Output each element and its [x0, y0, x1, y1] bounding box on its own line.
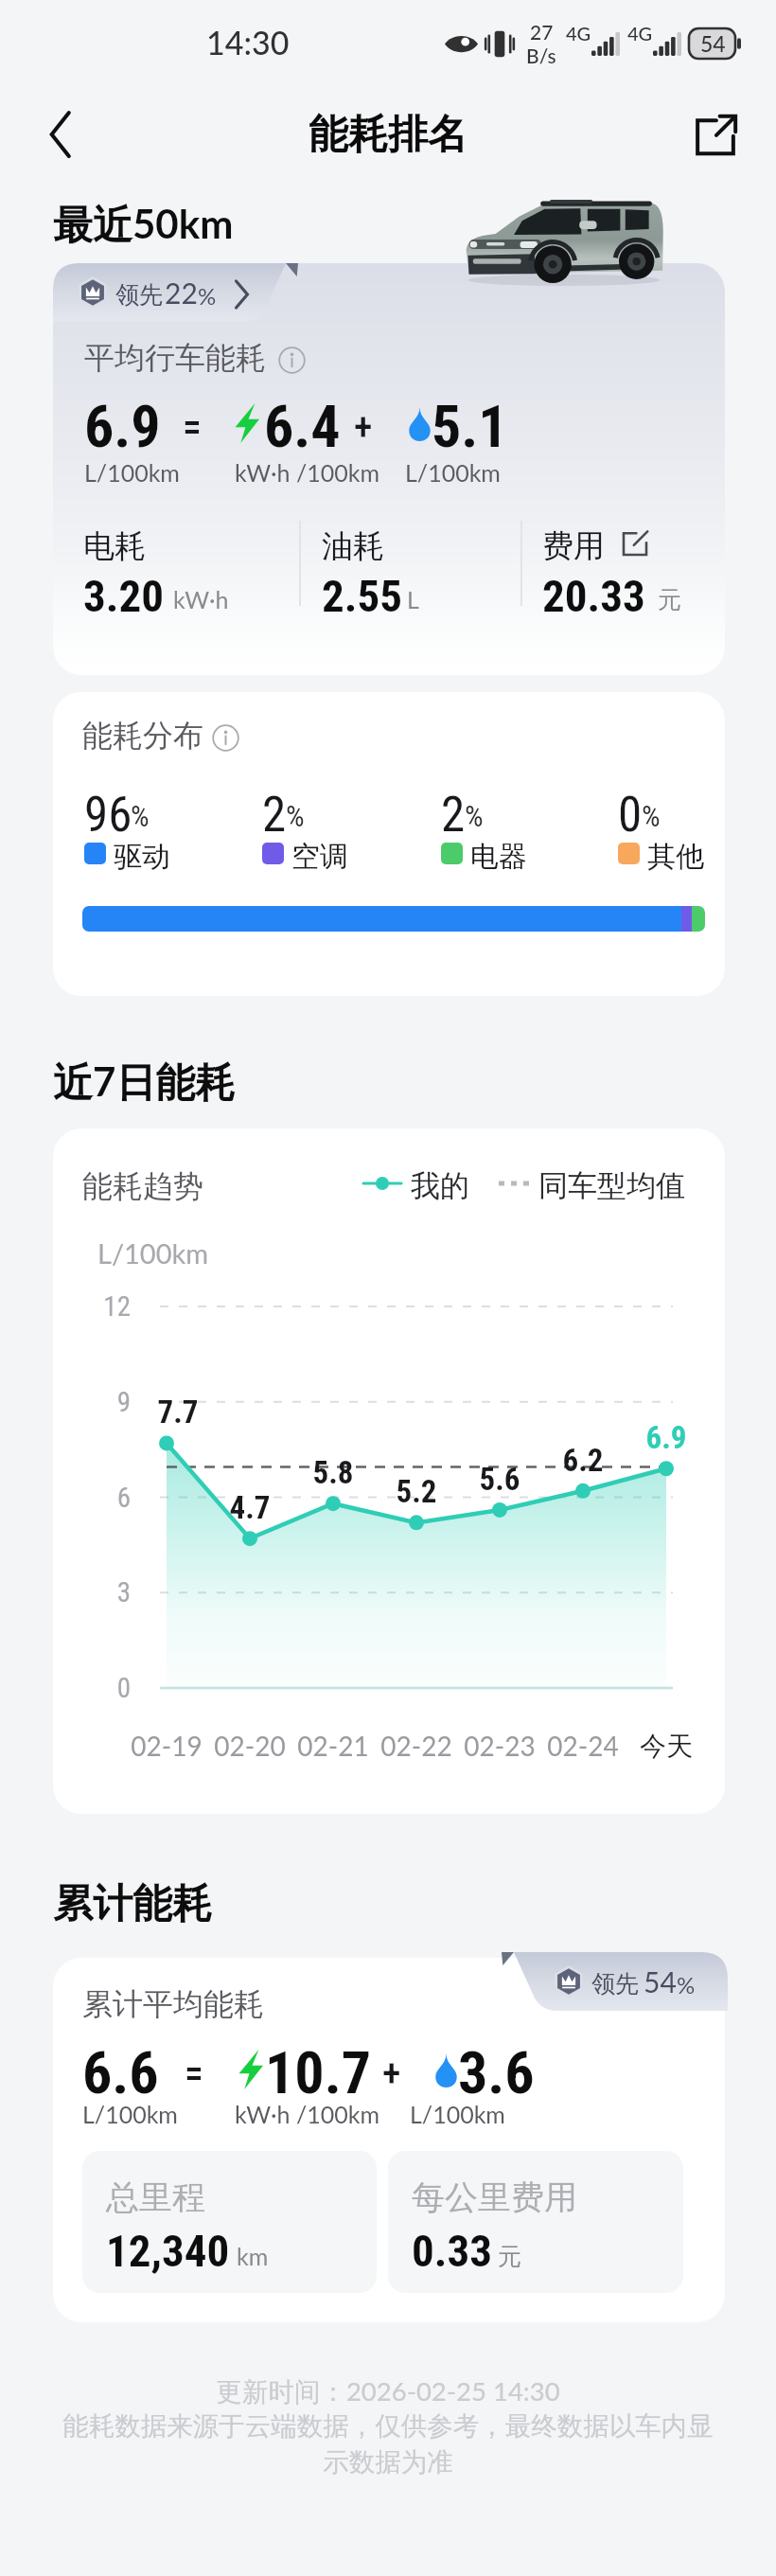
staticText: 54	[700, 30, 726, 57]
staticText: 02-23	[452, 1730, 547, 1762]
staticText: 02-22	[369, 1730, 464, 1762]
staticText: 27	[530, 20, 554, 44]
button[interactable]	[53, 692, 725, 996]
staticText: 4.7	[212, 1489, 288, 1526]
staticText: 2.55	[322, 570, 402, 622]
staticText: 0.33	[412, 2225, 492, 2277]
staticText: %	[131, 799, 150, 833]
button[interactable]	[53, 1958, 725, 2322]
staticText: 累计平均能耗	[82, 1985, 264, 2023]
staticText: kW·h /100km	[235, 458, 379, 487]
button[interactable]: 编辑费用	[620, 528, 650, 559]
staticText: 12,340	[106, 2225, 230, 2277]
staticText: +	[354, 405, 373, 450]
staticText: 累计能耗	[53, 1879, 212, 1929]
staticText: 54	[644, 1964, 677, 1999]
staticText: 能耗排名	[309, 110, 467, 160]
staticText: L	[407, 585, 419, 613]
staticText: 6.9	[628, 1419, 704, 1456]
staticText: 02-19	[119, 1730, 214, 1762]
button[interactable]	[53, 1128, 725, 1814]
button[interactable]: 每公里费用	[388, 2151, 683, 2293]
staticText: 费用	[542, 526, 605, 566]
staticText: %	[286, 799, 305, 833]
staticText: 我的	[411, 1167, 469, 1204]
staticText: 02-24	[536, 1730, 630, 1762]
staticText: 同车型均值	[538, 1167, 685, 1204]
staticText: 20.33	[542, 570, 645, 622]
staticText: 14:30	[206, 23, 290, 62]
staticText: 0	[74, 1672, 131, 1704]
staticText: 10.7	[265, 2038, 372, 2107]
staticText: %	[198, 282, 217, 310]
staticText: %	[677, 1971, 696, 1999]
staticText: L/100km	[405, 458, 501, 487]
staticText: 5.1	[432, 392, 508, 461]
staticText: 电器	[470, 839, 527, 875]
button[interactable]: 总里程	[82, 2151, 377, 2293]
staticText: 12	[74, 1290, 131, 1323]
staticText: 9	[74, 1386, 131, 1418]
staticText: 4G	[566, 22, 591, 44]
staticText: 3.20	[83, 570, 164, 622]
staticText: kW·h	[173, 585, 229, 613]
staticText: 3.6	[458, 2038, 535, 2107]
button[interactable]: 返回	[28, 102, 93, 167]
staticText: 油耗	[322, 526, 384, 566]
staticText: 22	[165, 275, 198, 310]
staticText: km	[237, 2242, 269, 2270]
staticText: 驱动	[114, 839, 170, 875]
button[interactable]: 领先	[502, 1952, 728, 2011]
staticText: L/100km	[410, 2100, 505, 2128]
staticText: 5.6	[462, 1461, 538, 1498]
staticText: 示数据为准	[0, 2446, 776, 2479]
staticText: 0	[618, 787, 643, 844]
staticText: 领先	[115, 280, 163, 310]
staticText: 最近50km	[53, 200, 234, 251]
staticText: 空调	[291, 839, 348, 875]
staticText: 6.6	[82, 2038, 159, 2107]
staticText: 能耗分布	[82, 717, 203, 755]
staticText: 6.4	[264, 392, 341, 461]
staticText: L/100km	[82, 2100, 178, 2128]
staticText: 7.7	[140, 1394, 216, 1430]
staticText: 今天	[619, 1730, 714, 1763]
staticText: =	[185, 2052, 203, 2096]
button[interactable]	[53, 263, 725, 675]
staticText: 2	[441, 787, 466, 844]
button[interactable]: 分享	[683, 102, 748, 167]
staticText: L/100km	[84, 458, 180, 487]
staticText: 2	[262, 787, 287, 844]
staticText: %	[642, 799, 661, 833]
staticText: 总里程	[106, 2176, 205, 2218]
staticText: 3	[74, 1576, 131, 1608]
staticText: =	[183, 405, 202, 450]
staticText: L/100km	[97, 1236, 209, 1270]
staticText: 5.8	[295, 1454, 371, 1491]
staticText: 近7日能耗	[53, 1057, 236, 1109]
staticText: 6.2	[545, 1442, 621, 1479]
staticText: kW·h /100km	[235, 2100, 379, 2128]
button[interactable]: 领先	[53, 263, 298, 322]
staticText: 更新时间：2026-02-25 14:30	[0, 2375, 776, 2408]
staticText: 6.9	[84, 392, 161, 461]
staticText: +	[382, 2052, 401, 2096]
staticText: 5.2	[379, 1473, 454, 1510]
staticText: 电耗	[83, 526, 146, 566]
staticText: 4G	[627, 22, 653, 44]
staticText: 其他	[647, 839, 704, 875]
staticText: 能耗数据来源于云端数据，仅供参考，最终数据以车内显	[0, 2410, 776, 2443]
staticText: 平均行车能耗	[84, 339, 266, 377]
staticText: B/s	[526, 44, 556, 67]
staticText: 能耗趋势	[82, 1167, 203, 1205]
staticText: 元	[498, 2242, 521, 2271]
staticText: %	[465, 799, 484, 833]
staticText: 96	[84, 787, 132, 844]
staticText: 元	[658, 585, 681, 614]
staticText: 02-21	[286, 1730, 380, 1762]
staticText: 6	[74, 1482, 131, 1514]
staticText: 每公里费用	[412, 2176, 577, 2218]
staticText: 02-20	[203, 1730, 297, 1762]
staticText: 领先	[591, 1969, 639, 1999]
